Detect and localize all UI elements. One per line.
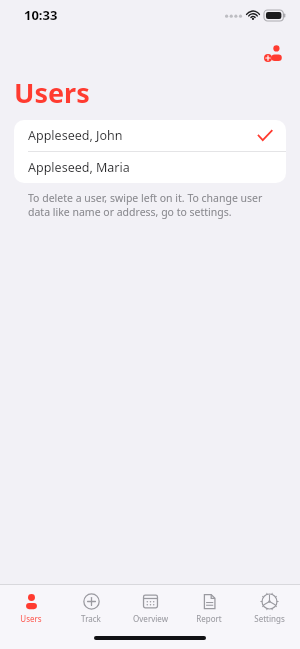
staticText: To delete a user, swipe left on it. To c… [28,191,278,219]
staticText: Overview [133,613,168,624]
button[interactable]: Add user [256,36,292,72]
staticText: Users [14,74,90,111]
button[interactable]: Report [181,591,237,626]
button[interactable]: Track [63,591,119,626]
staticText: Report [196,613,222,624]
button[interactable]: Overview [122,591,178,626]
button[interactable]: Users [3,591,59,626]
staticText: 10:33 [24,6,58,24]
button[interactable]: Appleseed, John [14,120,286,151]
staticText: Appleseed, John [28,127,123,144]
button[interactable]: Appleseed, Maria [14,152,286,183]
button[interactable]: Settings [241,591,297,626]
staticText: Users [20,613,42,624]
staticText: Track [81,613,101,624]
staticText: Settings [254,613,285,624]
staticText: Appleseed, Maria [28,159,130,176]
